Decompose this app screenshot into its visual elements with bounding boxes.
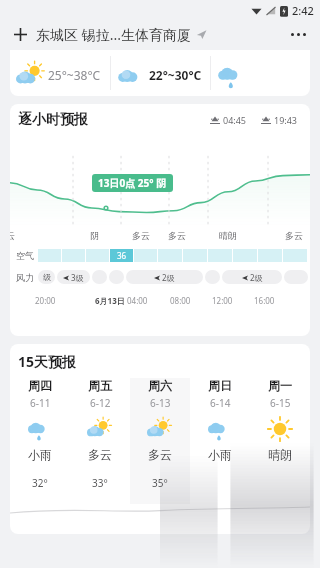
staticText: 3级	[71, 272, 84, 283]
staticText: 15天预报	[18, 352, 77, 371]
staticText: 晴朗	[268, 447, 292, 462]
staticText: 13日0点 25° 阴	[98, 176, 167, 190]
staticText: 19:43	[274, 114, 298, 126]
button[interactable]: 25°~38°C	[10, 50, 310, 96]
staticText: 08:00	[170, 295, 191, 306]
staticText: 周五	[88, 378, 112, 393]
staticText: 周六	[148, 378, 172, 393]
staticText: 级	[43, 272, 51, 282]
button[interactable]: 周日	[190, 378, 250, 504]
staticText: 04:45	[223, 114, 247, 126]
staticText: 多云	[132, 230, 150, 241]
staticText: 6月13日	[95, 295, 125, 306]
staticText: 晴朗	[219, 230, 237, 241]
staticText: 周四	[28, 378, 52, 393]
staticText: 阴	[90, 230, 99, 241]
staticText: 2级	[162, 272, 175, 283]
staticText: 16:00	[254, 295, 275, 306]
staticText: 小雨	[28, 447, 52, 462]
staticText: 12:00	[212, 295, 233, 306]
other: Location	[196, 29, 207, 40]
button[interactable]: 周五	[70, 378, 130, 504]
button[interactable]: 13日0点 25° 阴	[98, 176, 167, 190]
staticText: 小雨	[208, 447, 232, 462]
staticText: 云	[10, 230, 15, 241]
staticText: 22°~30°C	[149, 67, 202, 83]
staticText: 20:00	[35, 295, 56, 306]
staticText: 36	[117, 250, 127, 261]
button[interactable]: More options	[291, 22, 306, 46]
button[interactable]: Add city	[10, 24, 30, 44]
staticText: 风力	[16, 272, 34, 283]
staticText: 2级	[250, 272, 263, 283]
staticText: 32°	[32, 476, 48, 490]
staticText: 多云	[148, 447, 172, 462]
staticText: 6-14	[210, 396, 231, 410]
staticText: 6-12	[90, 396, 111, 410]
staticText: 逐小时预报	[18, 111, 88, 129]
staticText: 东城区 锡拉...生体育商厦	[36, 25, 191, 44]
staticText: 周日	[208, 378, 232, 393]
staticText: 多云	[285, 230, 303, 241]
button[interactable]: 周四	[10, 378, 70, 504]
staticText: 25°~38°C	[48, 67, 101, 83]
staticText: 04:00	[127, 295, 148, 306]
staticText: 周一	[268, 378, 292, 393]
staticText: 33°	[92, 476, 108, 490]
button[interactable]: 周一	[250, 378, 310, 504]
staticText: 2:42	[292, 3, 314, 18]
button[interactable]: 周六	[130, 378, 190, 504]
staticText: 6-13	[150, 396, 171, 410]
staticText: 6-11	[30, 396, 51, 410]
staticText: 35°	[152, 476, 168, 490]
staticText: 空气	[16, 250, 34, 261]
staticText: 多云	[88, 447, 112, 462]
staticText: 多云	[168, 230, 186, 241]
staticText: 6-15	[270, 396, 291, 410]
